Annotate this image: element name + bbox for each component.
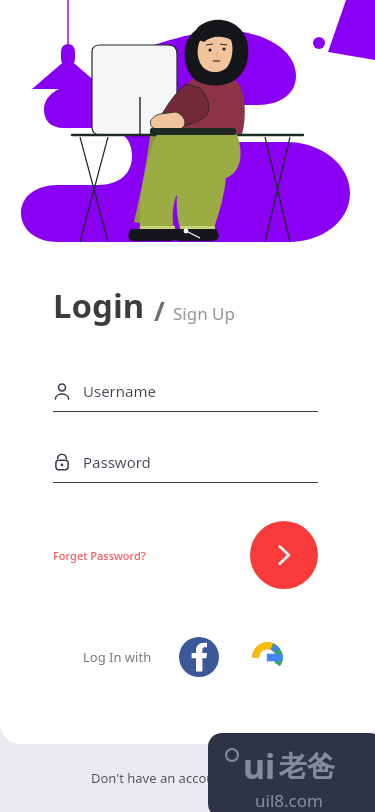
button[interactable]: Don't have an account? Sign Up xyxy=(0,744,375,812)
button[interactable]: Forget Password? xyxy=(53,544,146,567)
staticText: ui xyxy=(243,743,276,789)
staticText: Username xyxy=(83,381,156,401)
staticText: uil8.com xyxy=(255,789,323,812)
button[interactable]: Sign Up xyxy=(173,302,235,325)
staticText: Log In with xyxy=(83,648,152,666)
staticText: Forget Password? xyxy=(53,548,146,563)
staticText: Password xyxy=(83,452,151,472)
button[interactable]: Log in with Facebook xyxy=(179,637,219,677)
staticText: / xyxy=(154,293,165,328)
staticText: Login xyxy=(53,283,145,328)
staticText: Don't have an account? Sign Up xyxy=(91,769,284,787)
button[interactable]: Password xyxy=(53,452,318,483)
staticText: Sign Up xyxy=(173,302,235,325)
staticText: 老爸 xyxy=(279,749,335,784)
button[interactable]: Username xyxy=(53,381,318,412)
button[interactable]: Log in with Google xyxy=(249,639,285,675)
button[interactable]: Log in xyxy=(250,521,318,589)
